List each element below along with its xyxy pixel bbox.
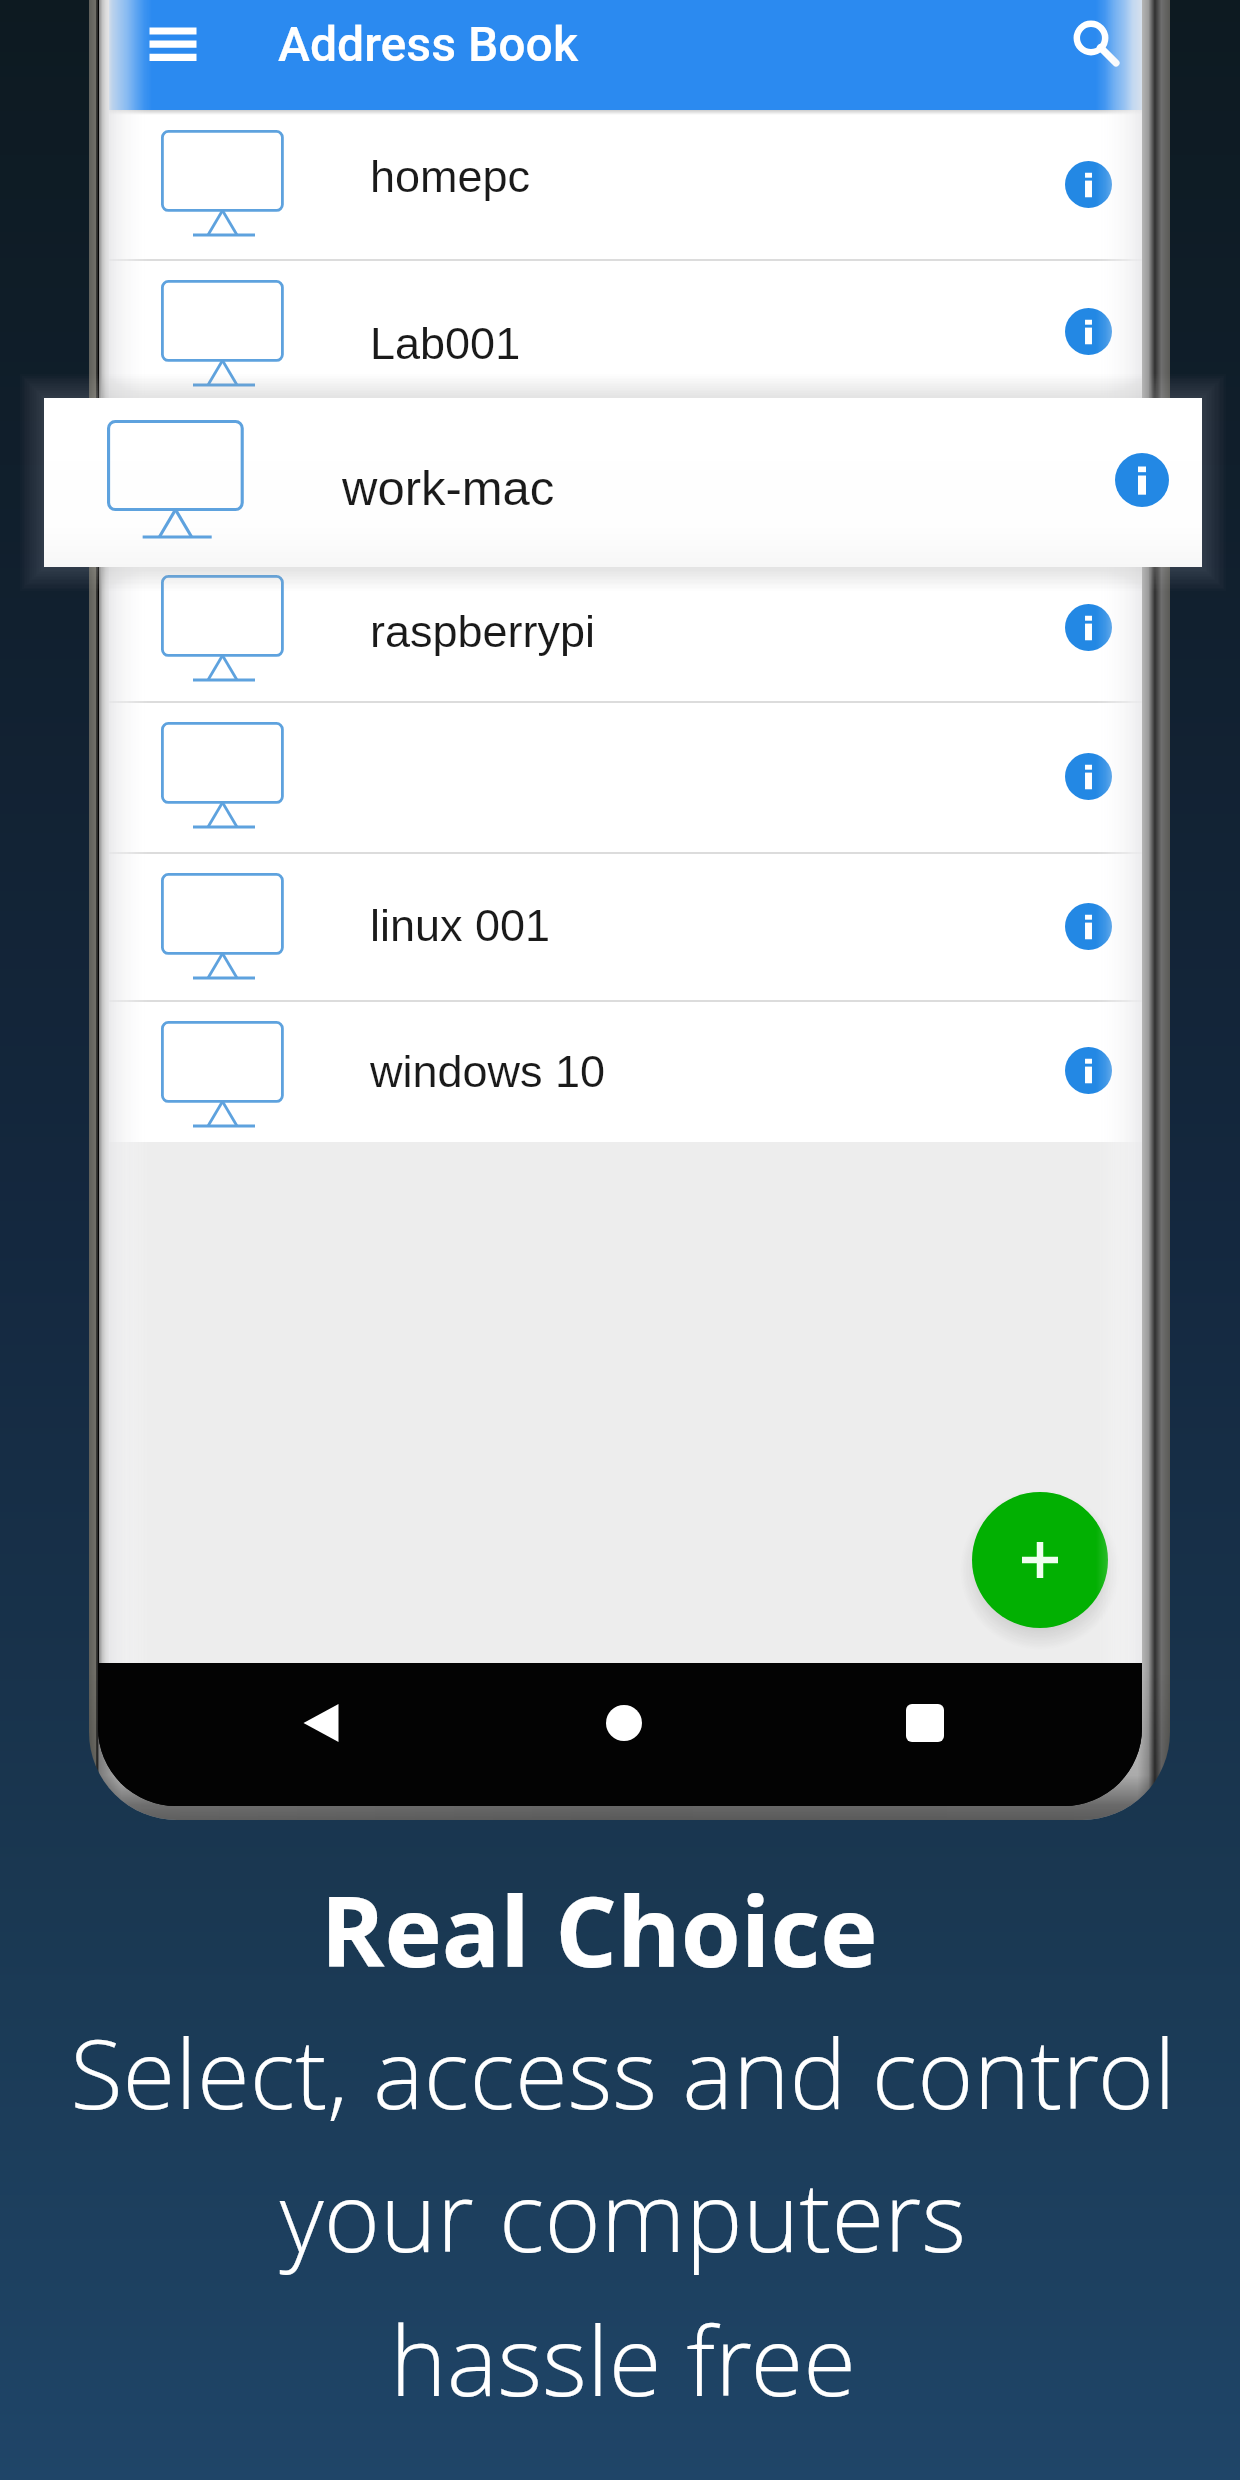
button[interactable]: Details [1065,753,1112,800]
button[interactable]: Details [1065,1047,1112,1094]
button[interactable]: homepc [99,111,1142,261]
staticText: raspberrypi [370,606,596,656]
staticText: Lab001 [370,318,521,368]
staticText: Select, access and control your computer… [3,2006,1240,2424]
button[interactable]: Add computer [972,1492,1108,1628]
button[interactable]: Home [586,1685,662,1761]
button[interactable]: Details [1065,903,1112,950]
button[interactable]: Back [283,1685,359,1761]
staticText: windows 10 [370,1046,606,1096]
button[interactable]: Details [1065,308,1112,355]
staticText: work-mac [370,463,566,513]
button[interactable]: raspberrypi [99,556,1142,703]
button[interactable]: Details [1115,453,1169,507]
staticText: linux 001 [370,900,551,950]
button[interactable]: work-mac [99,405,1142,556]
button[interactable]: Lab001 [99,261,1142,405]
staticText: Real Choice [0,1863,1219,1995]
button[interactable]: work-mac [44,398,1202,567]
button[interactable]: Details [1065,161,1112,208]
staticText: Address Book [278,16,578,72]
staticText: work-mac [342,461,555,516]
button[interactable]: Recent apps [887,1685,963,1761]
staticText: homepc [370,151,531,201]
button[interactable]: Search [1041,0,1141,100]
button[interactable]: Details [99,703,1142,854]
button[interactable]: Details [1065,604,1112,651]
button[interactable]: Open navigation menu [122,0,222,100]
button[interactable]: linux 001 [99,854,1142,1002]
button[interactable]: windows 10 [99,1002,1142,1143]
